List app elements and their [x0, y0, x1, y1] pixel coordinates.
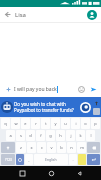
button[interactable]: t [41, 118, 50, 129]
staticText: p [94, 121, 97, 126]
staticText: u [64, 121, 67, 126]
staticText: e [24, 121, 27, 126]
button[interactable]: English [34, 154, 68, 165]
button[interactable]: j [66, 130, 75, 141]
staticText: a [9, 133, 12, 138]
staticText: Paypalbot to transfer funds? [14, 107, 74, 113]
button[interactable]: ?123 [1, 154, 15, 165]
staticText: v [50, 145, 53, 150]
button[interactable]: o [81, 118, 90, 129]
button[interactable]: r [31, 118, 40, 129]
staticText: t [45, 121, 47, 126]
staticText: d [29, 133, 32, 138]
staticText: q [4, 121, 7, 126]
staticText: i [75, 121, 77, 126]
button[interactable]: Profile [84, 7, 99, 22]
button[interactable]: Emoji [75, 83, 87, 95]
button[interactable]: l [86, 130, 95, 141]
button[interactable]: u [61, 118, 70, 129]
button[interactable]: Back [0, 7, 15, 22]
staticText: r [35, 121, 37, 126]
staticText: l [90, 133, 92, 138]
button[interactable]: i [71, 118, 80, 129]
staticText: English [45, 157, 57, 162]
staticText: z [20, 145, 22, 150]
staticText: g [49, 133, 52, 138]
staticText: b [60, 145, 63, 150]
staticText: k [79, 133, 82, 138]
button[interactable]: w [11, 118, 20, 129]
button[interactable]: Paypalbot [79, 101, 92, 114]
button[interactable]: f [36, 130, 45, 141]
staticText: x [30, 145, 33, 150]
staticText: Lisa [15, 11, 26, 19]
button[interactable]: c [37, 142, 46, 153]
button[interactable]: z [16, 142, 26, 153]
button[interactable]: Voice input [78, 154, 86, 165]
staticText: s [20, 133, 22, 138]
button[interactable]: , [25, 154, 33, 165]
button[interactable]: Send [87, 83, 99, 95]
staticText: n [70, 145, 73, 150]
staticText: j [70, 133, 72, 138]
button[interactable]: Add attachment [2, 83, 14, 95]
button[interactable]: Enter [87, 154, 100, 165]
button[interactable]: Key [87, 142, 100, 153]
staticText: h [59, 133, 62, 138]
staticText: f [40, 133, 42, 138]
staticText: o [84, 121, 87, 126]
button[interactable]: n [67, 142, 76, 153]
staticText: c [41, 145, 43, 150]
button[interactable]: Recent apps [15, 166, 29, 180]
button[interactable]: Back [72, 166, 86, 180]
button[interactable]: v [47, 142, 56, 153]
staticText: ?123 [5, 158, 12, 162]
staticText: I will pay you back [14, 86, 57, 93]
button[interactable]: k [76, 130, 85, 141]
button[interactable]: a [6, 130, 15, 141]
button[interactable]: Emoji keyboard [16, 154, 24, 165]
staticText: y [54, 121, 57, 126]
button[interactable]: p [91, 118, 100, 129]
staticText: . [72, 157, 74, 162]
button[interactable]: Key [1, 142, 15, 153]
button[interactable]: More [93, 108, 100, 115]
button[interactable]: y [51, 118, 60, 129]
button[interactable]: s [16, 130, 25, 141]
button[interactable]: q [1, 118, 10, 129]
button[interactable]: Home [44, 166, 58, 180]
button[interactable]: e [21, 118, 30, 129]
button[interactable]: d [26, 130, 35, 141]
staticText: m [80, 145, 84, 150]
button[interactable]: Share [92, 99, 101, 108]
button[interactable]: x [27, 142, 36, 153]
staticText: , [28, 157, 30, 162]
button[interactable]: h [56, 130, 65, 141]
button[interactable]: g [46, 130, 55, 141]
staticText: Do you wish to chat with [14, 101, 66, 107]
button[interactable]: Add attachment [2, 83, 99, 95]
button[interactable]: b [57, 142, 66, 153]
staticText: w [14, 121, 18, 126]
button[interactable]: m [77, 142, 86, 153]
